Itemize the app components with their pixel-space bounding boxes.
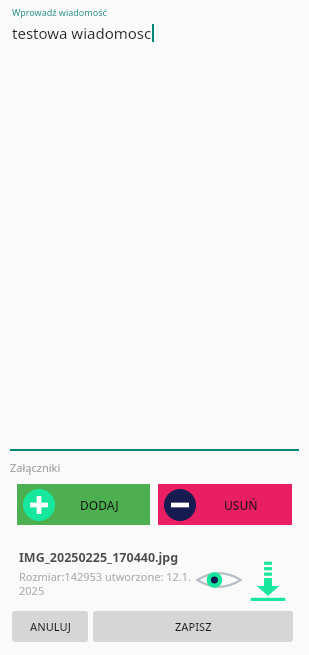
button[interactable]: USUŃ xyxy=(158,484,292,525)
staticText: USUŃ xyxy=(224,497,258,513)
staticText: Wprowadź wiadomość xyxy=(12,6,107,18)
staticText: testowa wiadomosc xyxy=(12,23,152,43)
staticText: DODAJ xyxy=(80,497,119,513)
button[interactable]: Pobierz xyxy=(250,560,286,602)
button[interactable]: Wprowadź wiadomość xyxy=(0,0,309,43)
staticText: ANULUJ xyxy=(30,619,71,634)
staticText: Rozmiar:142953 utworzone: 12.1. 2025 xyxy=(19,569,191,598)
button[interactable]: ZAPISZ xyxy=(93,611,293,642)
staticText: Załączniki xyxy=(10,460,61,475)
staticText: IMG_20250225_170440.jpg xyxy=(19,549,179,566)
button[interactable]: DODAJ xyxy=(17,484,150,525)
button[interactable]: Podgląd xyxy=(196,567,242,593)
button[interactable]: ANULUJ xyxy=(12,611,88,642)
staticText: ZAPISZ xyxy=(175,619,212,634)
